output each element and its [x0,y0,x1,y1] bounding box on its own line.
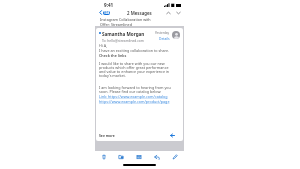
staticText: I am looking forward to hearing from you… [99,85,175,94]
staticText: Hi A, [99,43,107,48]
other: Previous message [166,11,171,15]
button[interactable]: Reply [170,133,175,138]
staticText: Yesterday [155,31,170,35]
staticText: 124 [104,11,110,15]
staticText: Details [159,36,170,40]
button[interactable]: Previous message [165,10,172,16]
staticText: To: hello@streamlined.com [102,38,144,42]
staticText: I have an exciting collaboration to shar… [99,48,170,53]
other: Back [99,10,102,15]
button[interactable]: Archive [130,151,148,162]
staticText: Offer: Streamlined [100,22,132,26]
staticText: Samantha Morgan [102,31,145,37]
staticText: 2 Messages [127,10,152,16]
staticText: Instagram Collaboration with [100,17,151,22]
button[interactable]: Delete [95,151,112,162]
button[interactable]: Move to folder [112,151,130,162]
staticText: I would like to share with you our new p… [99,61,175,78]
button[interactable]: Compose [166,151,184,162]
button[interactable]: Reply [148,151,166,162]
other: Next message [176,11,181,15]
button[interactable]: Details [159,36,170,40]
other: Reply [170,133,175,138]
button[interactable]: Back [95,10,110,15]
staticText: Check the links [99,53,127,58]
staticText: See more [99,133,115,138]
button[interactable]: Next message [175,10,182,16]
button[interactable]: https://www.example.com/product/page [99,99,170,104]
staticText: 9:41 [104,2,114,8]
button[interactable]: Link: https://www.example.com/catalog [99,94,168,99]
